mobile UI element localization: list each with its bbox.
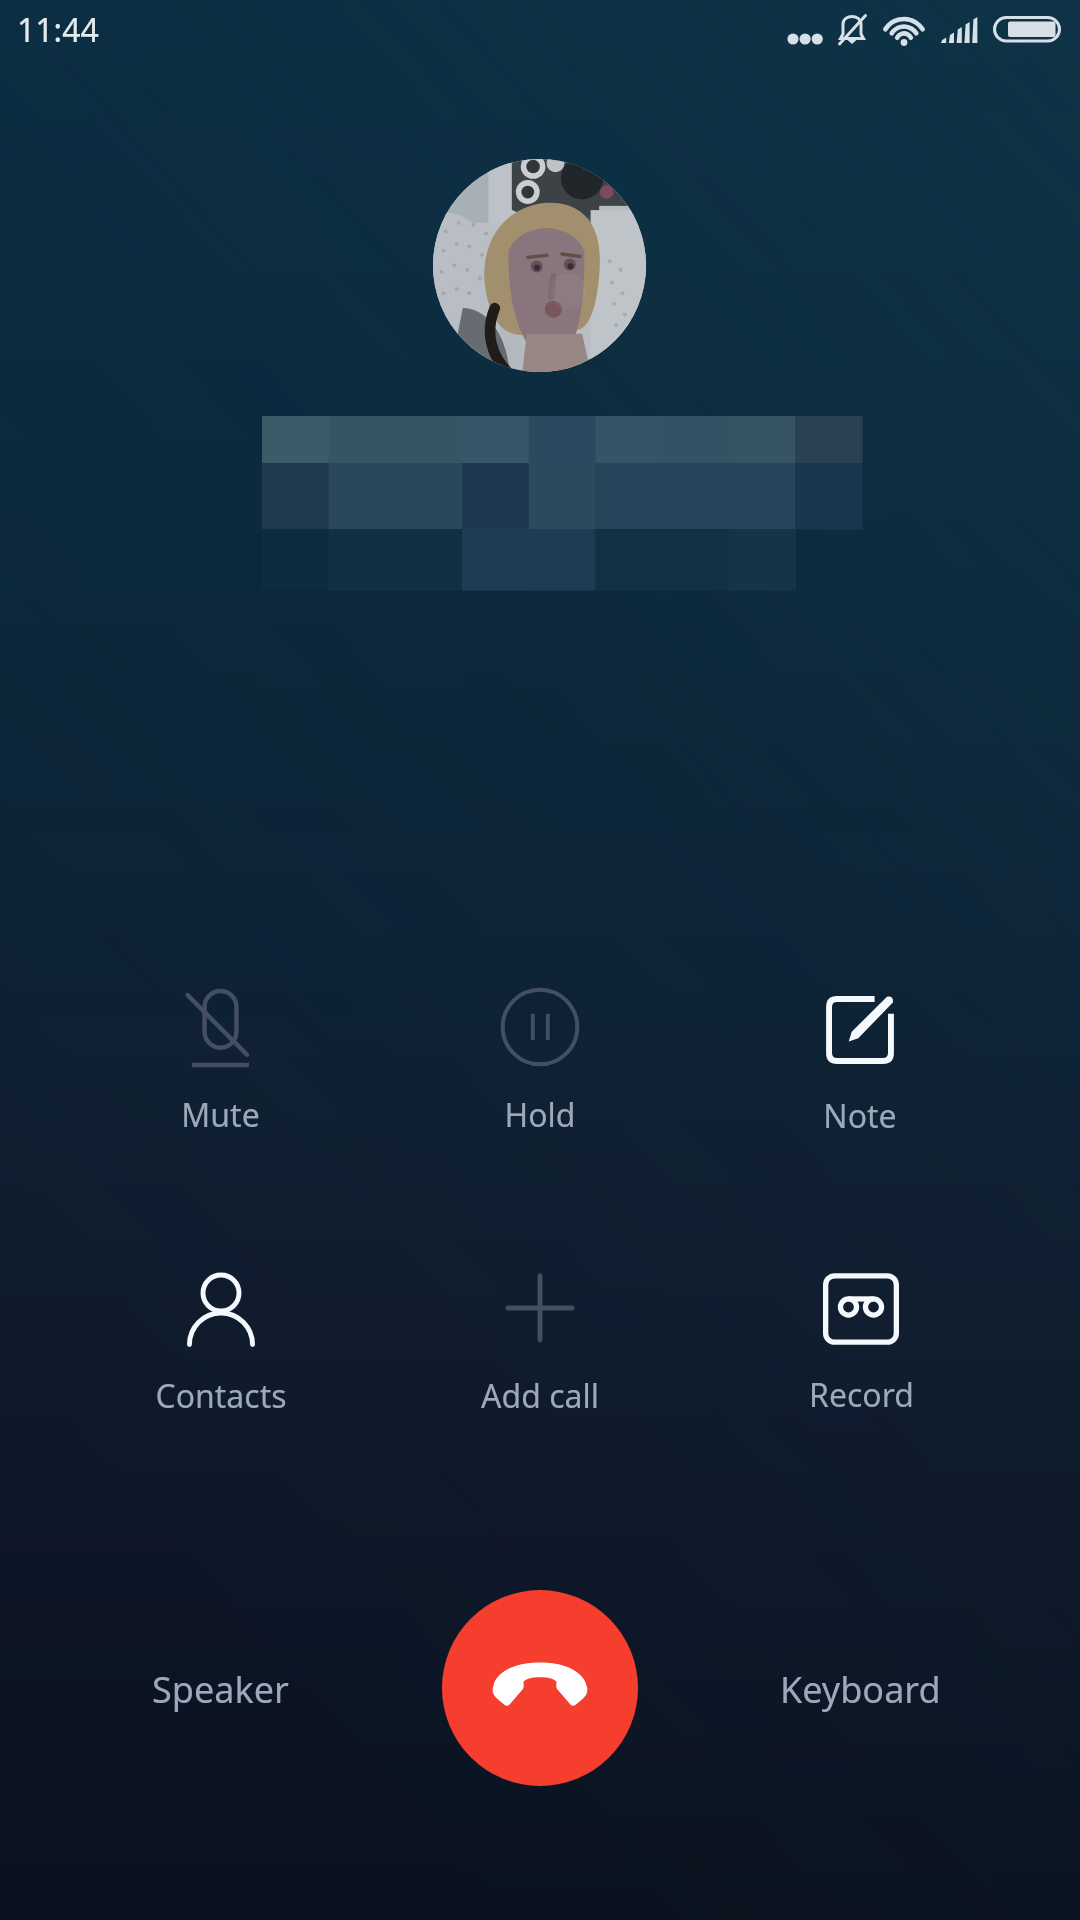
button[interactable]: Record — [751, 1224, 971, 1428]
staticText: Hold — [504, 1093, 576, 1137]
staticText: Contacts — [155, 1374, 287, 1418]
button[interactable]: Contacts — [111, 1224, 331, 1429]
button[interactable]: Mute — [110, 943, 330, 1148]
staticText: Speaker — [152, 1665, 289, 1714]
staticText: Note — [823, 1094, 897, 1138]
button[interactable]: End call — [442, 1590, 638, 1786]
button[interactable]: Keyboard — [740, 1645, 980, 1733]
button[interactable]: Hold — [430, 942, 650, 1148]
button[interactable]: Speaker — [100, 1645, 340, 1733]
staticText: Add call — [481, 1374, 599, 1418]
button[interactable]: Add call — [430, 1223, 650, 1429]
button[interactable]: Note — [750, 945, 970, 1149]
staticText: 11:44 — [17, 8, 99, 52]
staticText: Keyboard — [780, 1665, 941, 1714]
staticText: Record — [809, 1373, 914, 1417]
staticText: Mute — [181, 1093, 260, 1137]
